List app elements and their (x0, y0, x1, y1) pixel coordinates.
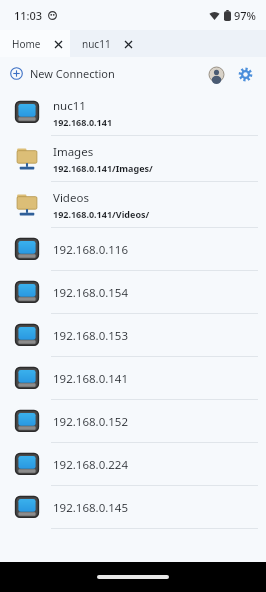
staticText: 11:03 (14, 8, 43, 23)
button[interactable]: Close Home tab (50, 36, 66, 52)
button[interactable]: 192.168.0.141 (0, 357, 266, 400)
button[interactable]: Home (0, 30, 70, 57)
staticText: Home (12, 37, 41, 51)
button[interactable]: Videos (0, 182, 266, 228)
button[interactable]: nuc11 (0, 90, 266, 136)
staticText: 97% (234, 8, 256, 23)
button[interactable]: Account (203, 61, 229, 87)
button[interactable]: Images (0, 136, 266, 182)
staticText: 192.168.0.145 (53, 500, 129, 516)
staticText: 192.168.0.224 (53, 457, 129, 473)
staticText: 192.168.0.153 (53, 328, 129, 344)
button[interactable]: 192.168.0.116 (0, 228, 266, 271)
button[interactable]: New Connection (0, 61, 125, 86)
staticText: Videos (53, 190, 89, 206)
button[interactable]: 192.168.0.224 (0, 443, 266, 486)
button[interactable]: 192.168.0.153 (0, 314, 266, 357)
staticText: 192.168.0.141 (53, 371, 129, 387)
staticText: Images (53, 144, 94, 160)
staticText: 192.168.0.141 (53, 116, 113, 128)
button[interactable]: nuc11 (70, 30, 140, 57)
button[interactable]: Close nuc11 tab (120, 36, 136, 52)
staticText: 192.168.0.152 (53, 414, 129, 430)
staticText: 192.168.0.141/Videos/ (53, 208, 150, 220)
button[interactable]: Settings (232, 61, 258, 87)
staticText: 192.168.0.141/Images/ (53, 162, 153, 174)
button[interactable]: 192.168.0.152 (0, 400, 266, 443)
button[interactable]: 192.168.0.145 (0, 486, 266, 529)
staticText: nuc11 (53, 98, 86, 114)
staticText: 192.168.0.154 (53, 285, 129, 301)
staticText: New Connection (30, 66, 115, 81)
button[interactable]: 192.168.0.154 (0, 271, 266, 314)
staticText: nuc11 (82, 37, 111, 51)
staticText: 192.168.0.116 (53, 242, 129, 258)
